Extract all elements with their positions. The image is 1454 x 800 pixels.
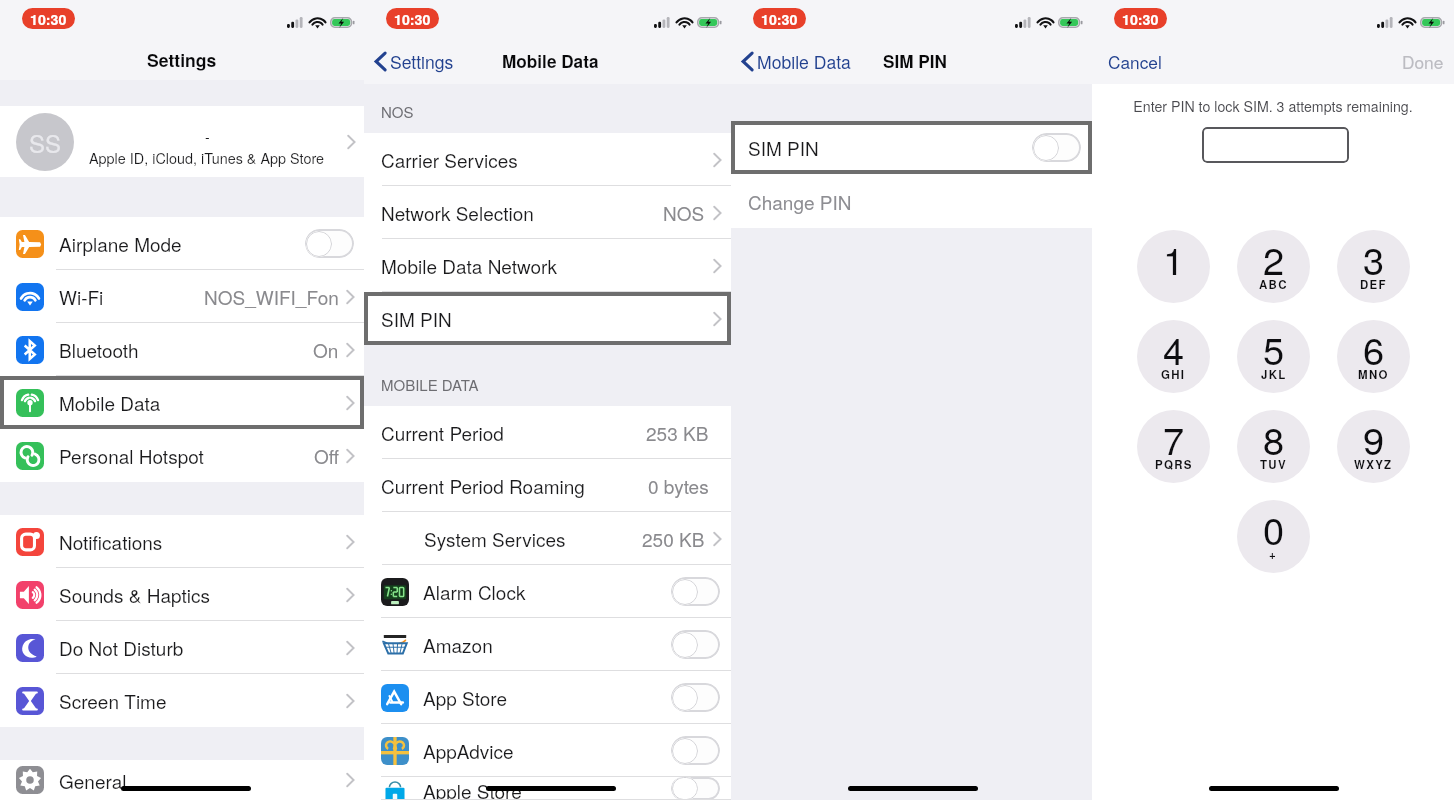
button[interactable]: 9 (1337, 410, 1410, 483)
staticText: Bluetooth (59, 336, 139, 363)
staticText: Off (314, 442, 339, 469)
staticText: MNO (1358, 366, 1389, 382)
staticText: Alarm Clock (423, 578, 526, 605)
staticText: Carrier Services (381, 146, 518, 173)
button[interactable]: Screen Time (0, 674, 364, 727)
staticText: 7 (1163, 411, 1185, 465)
button[interactable]: AppAdvice (364, 724, 731, 777)
button[interactable]: Do Not Disturb (0, 621, 364, 674)
staticText: System Services (424, 525, 566, 552)
button[interactable]: Back to Settings (375, 49, 454, 74)
button[interactable]: Airplane Mode (0, 217, 364, 270)
button[interactable]: 6 (1337, 320, 1410, 393)
staticText: Change PIN (748, 188, 852, 215)
staticText: Mobile Data (59, 389, 161, 416)
staticText: Sounds & Haptics (59, 581, 210, 608)
button[interactable]: Personal Hotspot (0, 429, 364, 482)
button[interactable]: 5 (1237, 320, 1310, 393)
button[interactable]: 2 (1237, 230, 1310, 303)
staticText: 10:30 (761, 9, 798, 29)
button[interactable]: SIM PIN (731, 121, 1092, 174)
button[interactable]: SIM PIN (364, 292, 731, 345)
button[interactable]: Cancel (1108, 49, 1162, 74)
button[interactable]: Alarm Clock (364, 565, 731, 618)
staticText: ABC (1259, 276, 1288, 292)
staticText: App Store (423, 684, 508, 711)
staticText: DEF (1360, 276, 1387, 292)
staticText: PQRS (1155, 456, 1193, 472)
button[interactable]: Change PIN (731, 174, 1092, 228)
button[interactable]: System Services (364, 512, 731, 565)
staticText: Mobile Data Network (381, 252, 558, 279)
button[interactable]: Wi-Fi (0, 270, 364, 323)
staticText: Do Not Disturb (59, 634, 184, 661)
staticText: 8 (1263, 411, 1285, 465)
button[interactable]: Current Period Roaming (364, 459, 731, 512)
button[interactable]: Network Selection (364, 186, 731, 239)
staticText: 9 (1363, 411, 1385, 465)
button[interactable]: Apple Store (364, 777, 731, 800)
staticText: Amazon (423, 631, 493, 658)
staticText: SIM PIN (381, 305, 452, 332)
staticText: Current Period (381, 419, 504, 446)
staticText: AppAdvice (423, 737, 514, 764)
button[interactable]: 8 (1237, 410, 1310, 483)
staticText: 10:30 (30, 9, 67, 29)
button[interactable]: Back to Mobile Data (742, 49, 851, 74)
staticText: Personal Hotspot (59, 442, 204, 469)
staticText: NOS (663, 199, 705, 226)
button[interactable]: 1 (1137, 230, 1210, 303)
staticText: 10:30 (1122, 9, 1159, 29)
staticText: On (313, 336, 339, 363)
button[interactable]: General (0, 760, 364, 800)
button[interactable]: Amazon (364, 618, 731, 671)
staticText: Wi-Fi (59, 283, 104, 310)
staticText: 5 (1263, 321, 1285, 375)
staticText: SIM PIN (883, 49, 947, 74)
staticText: + (1269, 546, 1278, 562)
staticText: 253 KB (646, 419, 709, 446)
staticText: SIM PIN (748, 134, 819, 161)
staticText: Apple Store (423, 777, 522, 800)
staticText: 250 KB (642, 525, 705, 552)
staticText: Airplane Mode (59, 230, 182, 257)
button[interactable]: Sounds & Haptics (0, 568, 364, 621)
staticText: MOBILE DATA (381, 374, 479, 395)
staticText: Settings (390, 49, 454, 74)
button[interactable]: Carrier Services (364, 133, 731, 186)
staticText: - (205, 126, 210, 146)
button[interactable]: App Store (364, 671, 731, 724)
staticText: Screen Time (59, 687, 167, 714)
staticText: Notifications (59, 528, 163, 555)
staticText: 2 (1263, 231, 1285, 285)
button[interactable]: Current Period (364, 406, 731, 459)
button[interactable]: Mobile Data Network (364, 239, 731, 292)
button[interactable]: 0 (1237, 500, 1310, 573)
staticText: JKL (1261, 366, 1287, 382)
button[interactable]: Bluetooth (0, 323, 364, 376)
staticText: SS (29, 125, 62, 159)
staticText: TUV (1260, 456, 1287, 472)
staticText: 0 bytes (648, 472, 709, 499)
staticText: Mobile Data (757, 49, 851, 74)
staticText: GHI (1161, 366, 1186, 382)
staticText: Settings (147, 47, 217, 72)
staticText: Current Period Roaming (381, 472, 585, 499)
staticText: General (59, 767, 127, 794)
staticText: NOS (381, 101, 414, 122)
button[interactable]: 4 (1137, 320, 1210, 393)
button[interactable]: PIN field (1202, 127, 1349, 163)
staticText: 10:30 (394, 9, 431, 29)
staticText: 0 (1263, 501, 1285, 555)
staticText: Enter PIN to lock SIM. 3 attempts remain… (1092, 96, 1454, 116)
button[interactable]: Done (1402, 49, 1444, 74)
button[interactable]: Notifications (0, 515, 364, 568)
button[interactable]: 7 (1137, 410, 1210, 483)
staticText: 6 (1363, 321, 1385, 375)
staticText: 1 (1163, 231, 1185, 285)
button[interactable]: 3 (1337, 230, 1410, 303)
button[interactable]: Mobile Data (0, 376, 364, 429)
button[interactable]: SS (0, 106, 364, 177)
staticText: WXYZ (1354, 456, 1393, 472)
staticText: 3 (1363, 231, 1385, 285)
